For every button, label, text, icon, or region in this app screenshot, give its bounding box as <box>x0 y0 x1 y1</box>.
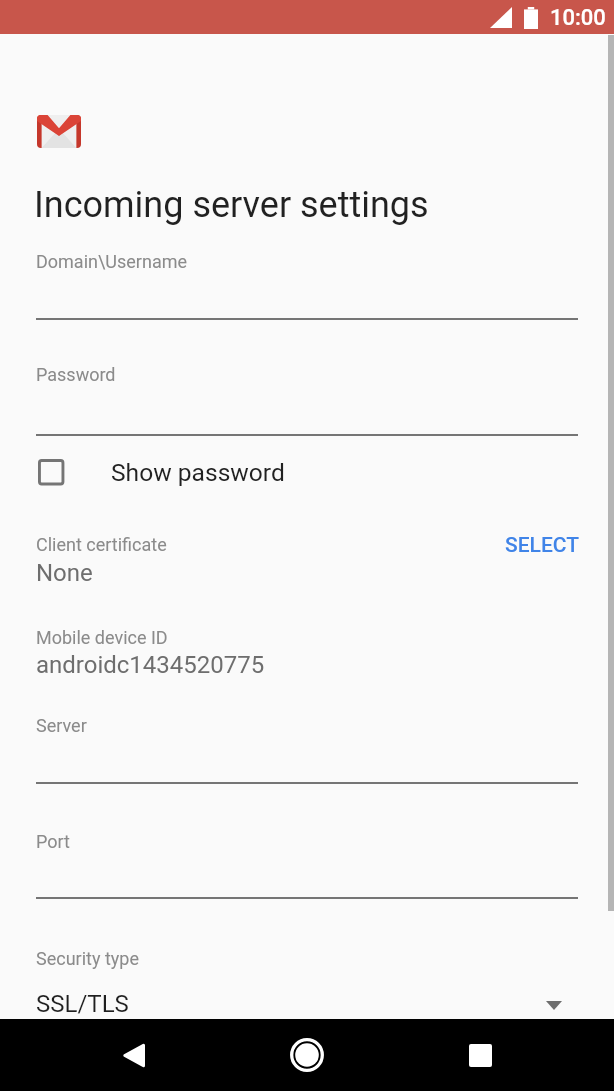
button[interactable]: Domain\Username <box>36 244 578 320</box>
staticText: None <box>36 559 93 587</box>
staticText: Password <box>36 364 116 385</box>
button[interactable]: Home <box>271 1019 343 1091</box>
staticText: Security type <box>36 948 139 969</box>
staticText: Incoming server settings <box>34 184 429 226</box>
staticText: Port <box>36 831 70 852</box>
button[interactable]: Port <box>36 824 578 899</box>
button[interactable]: Security type <box>36 941 578 1019</box>
staticText: SSL/TLS <box>36 990 129 1018</box>
staticText: Client certificate <box>36 534 167 555</box>
button[interactable]: SELECT <box>489 521 595 570</box>
staticText: Domain\Username <box>36 251 188 272</box>
button[interactable]: Back <box>98 1019 170 1091</box>
button[interactable]: Show password <box>0 452 614 492</box>
staticText: Show password <box>111 458 285 487</box>
button[interactable]: Server <box>36 708 578 784</box>
button[interactable]: Password <box>36 357 578 435</box>
staticText: androidc1434520775 <box>36 651 265 679</box>
staticText: Server <box>36 715 87 736</box>
staticText: Mobile device ID <box>36 627 168 648</box>
button[interactable]: Recent apps <box>444 1019 516 1091</box>
staticText: SELECT <box>505 533 579 558</box>
staticText: 10:00 <box>550 5 606 31</box>
